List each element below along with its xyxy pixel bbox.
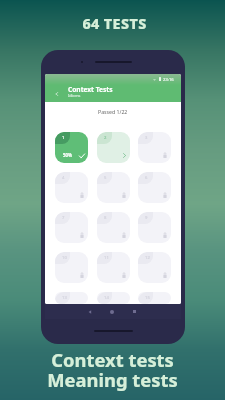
button[interactable]: 11	[97, 252, 130, 283]
button[interactable]: Home	[105, 304, 119, 319]
button[interactable]: 9	[138, 212, 171, 243]
button[interactable]: 8	[97, 212, 130, 243]
button[interactable]: 6	[138, 172, 171, 203]
staticText: Context Tests	[68, 85, 113, 94]
staticText: 4	[62, 175, 65, 181]
staticText: 8	[104, 215, 107, 221]
staticText: 23:16	[163, 77, 174, 83]
staticText: 2	[104, 135, 107, 141]
button[interactable]: 4	[55, 172, 88, 203]
button[interactable]: 14	[97, 292, 130, 304]
button[interactable]: 1	[55, 132, 88, 163]
button[interactable]: Recents	[127, 304, 141, 319]
button[interactable]: 10	[55, 252, 88, 283]
staticText: 15	[145, 295, 150, 301]
staticText: 14	[104, 295, 109, 301]
staticText: 5	[104, 175, 107, 181]
button[interactable]: Back	[49, 85, 65, 102]
staticText: 10	[62, 255, 67, 261]
staticText: 6	[145, 175, 148, 181]
staticText: 7	[62, 215, 65, 221]
staticText: 3	[145, 135, 148, 141]
staticText: 12	[145, 255, 150, 261]
staticText: Passed 1/22	[98, 108, 128, 115]
button[interactable]: 13	[55, 292, 88, 304]
staticText: 50%	[63, 152, 72, 158]
staticText: Idioms	[68, 93, 81, 98]
staticText: 13	[62, 295, 67, 301]
button[interactable]: 2	[97, 132, 130, 163]
staticText: 9	[145, 215, 148, 221]
staticText: 11	[104, 255, 109, 261]
button[interactable]: 15	[138, 292, 171, 304]
staticText: 1	[62, 135, 65, 141]
button[interactable]: Back	[83, 304, 97, 319]
button[interactable]: 3	[138, 132, 171, 163]
button[interactable]: 12	[138, 252, 171, 283]
button[interactable]: 7	[55, 212, 88, 243]
staticText: 64 TESTS	[2, 14, 225, 33]
staticText: Context tests Meaning tests	[0, 347, 225, 393]
button[interactable]: 5	[97, 172, 130, 203]
